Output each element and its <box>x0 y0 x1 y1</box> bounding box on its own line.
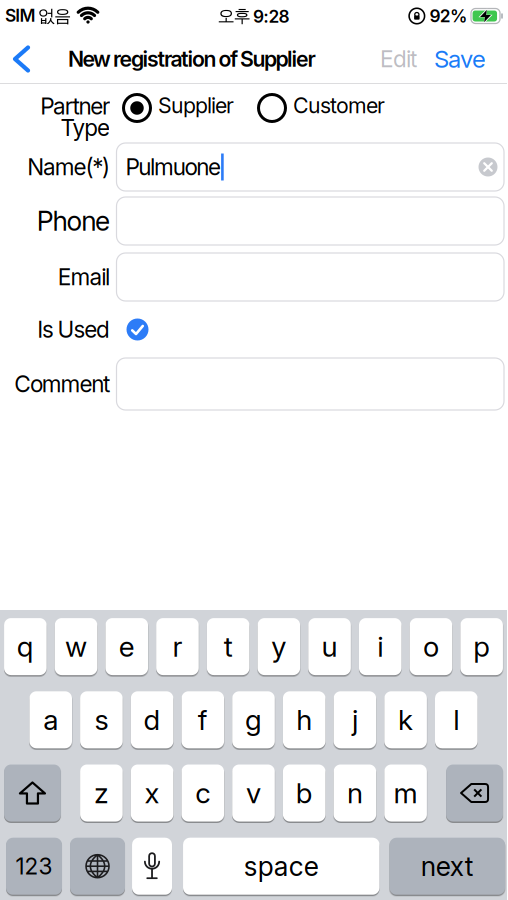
button[interactable]: c <box>181 764 224 821</box>
button[interactable]: Back <box>0 47 38 70</box>
staticText: Phone <box>37 205 110 237</box>
staticText: 오후 9:28 <box>217 5 290 27</box>
button[interactable]: m <box>384 764 427 821</box>
staticText: n <box>347 776 363 809</box>
staticText: l <box>453 703 459 736</box>
button[interactable]: Clear text <box>478 157 504 176</box>
button[interactable]: o <box>410 618 452 675</box>
button[interactable]: Is Used <box>116 318 148 340</box>
button[interactable]: n <box>334 764 376 821</box>
button[interactable]: d <box>131 691 173 748</box>
button[interactable]: space <box>183 838 379 895</box>
staticText: Partner <box>40 93 110 119</box>
button[interactable]: a <box>29 691 72 748</box>
button[interactable]: Email <box>116 253 504 301</box>
button[interactable]: y <box>258 618 300 675</box>
button[interactable]: p <box>460 618 503 675</box>
staticText: v <box>246 776 261 809</box>
staticText: b <box>296 776 313 809</box>
button[interactable]: i <box>359 618 401 675</box>
staticText: a <box>43 703 58 736</box>
button[interactable]: g <box>232 691 275 748</box>
button[interactable]: f <box>181 691 224 748</box>
staticText: z <box>94 776 109 809</box>
staticText: Save <box>434 45 486 73</box>
button[interactable]: v <box>232 764 275 821</box>
button[interactable]: e <box>105 618 148 675</box>
staticText: space <box>244 850 319 882</box>
button[interactable]: x <box>131 764 173 821</box>
button[interactable]: Dictate <box>132 838 172 895</box>
staticText: j <box>352 703 358 736</box>
button[interactable]: Save <box>417 45 507 73</box>
staticText: Edit <box>380 46 417 72</box>
staticText: next <box>421 850 474 882</box>
button[interactable]: Phone <box>116 197 504 245</box>
staticText: f <box>198 703 208 736</box>
staticText: u <box>322 630 338 663</box>
button[interactable]: Shift <box>4 764 61 821</box>
staticText: Is Used <box>37 316 110 343</box>
button[interactable]: next <box>389 838 505 895</box>
button[interactable]: r <box>156 618 199 675</box>
staticText: Pulmuone <box>125 154 221 180</box>
button[interactable]: w <box>55 618 97 675</box>
staticText: 123 <box>15 853 52 879</box>
button[interactable]: s <box>80 691 123 748</box>
staticText: d <box>144 703 161 736</box>
staticText: y <box>271 630 286 663</box>
staticText: w <box>65 630 87 663</box>
staticText: Type <box>61 114 110 141</box>
staticText: q <box>17 630 34 663</box>
button[interactable]: z <box>80 764 123 821</box>
staticText: g <box>245 703 262 736</box>
button[interactable]: Customer <box>258 94 385 122</box>
button[interactable]: t <box>207 618 249 675</box>
staticText: Supplier <box>158 93 234 118</box>
staticText: x <box>145 776 160 809</box>
button[interactable]: 123 <box>6 838 62 895</box>
staticText: k <box>398 703 413 736</box>
button[interactable]: h <box>283 691 325 748</box>
button[interactable]: k <box>384 691 427 748</box>
staticText: o <box>423 630 439 663</box>
button[interactable]: Supplier <box>123 94 234 122</box>
staticText: Email <box>58 264 110 290</box>
staticText: t <box>224 630 233 663</box>
button[interactable]: u <box>308 618 351 675</box>
button[interactable]: Edit <box>380 46 417 72</box>
button[interactable]: Delete <box>446 764 503 821</box>
staticText: Comment <box>14 371 110 397</box>
staticText: m <box>394 776 418 809</box>
button[interactable]: b <box>283 764 325 821</box>
staticText: c <box>195 776 210 809</box>
staticText: SIM 없음 <box>5 5 71 27</box>
staticText: h <box>296 703 312 736</box>
button[interactable]: Next keyboard <box>70 838 125 895</box>
button[interactable]: q <box>4 618 47 675</box>
staticText: e <box>119 630 135 663</box>
staticText: New registration of Supplier <box>68 46 315 72</box>
button[interactable]: j <box>334 691 376 748</box>
staticText: 92% <box>430 6 467 26</box>
staticText: Customer <box>293 93 385 118</box>
staticText: r <box>172 630 182 663</box>
button[interactable]: Name <box>116 143 504 191</box>
staticText: s <box>94 703 108 736</box>
staticText: i <box>377 630 383 663</box>
button[interactable]: Comment <box>116 358 504 410</box>
button[interactable]: l <box>435 691 478 748</box>
staticText: Name(*) <box>27 154 110 180</box>
staticText: p <box>473 630 490 663</box>
